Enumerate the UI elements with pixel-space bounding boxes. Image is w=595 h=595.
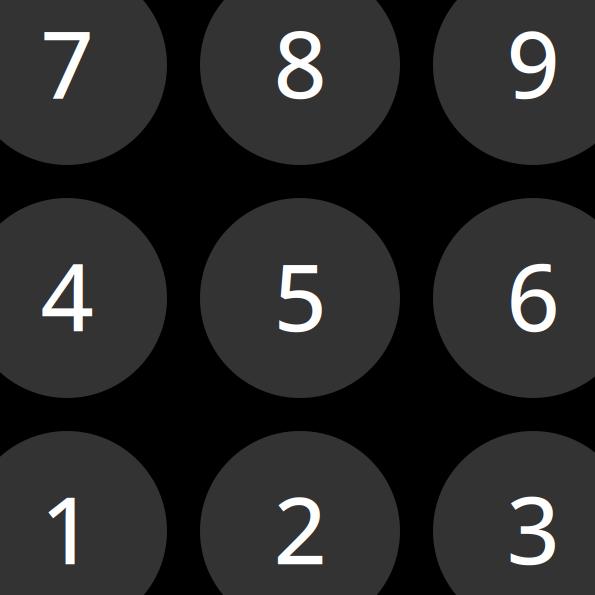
staticText: 3 (506, 464, 559, 591)
button[interactable]: 9 (433, 0, 595, 165)
staticText: 8 (273, 0, 326, 125)
button[interactable]: 3 (433, 431, 595, 595)
staticText: 1 (40, 464, 93, 591)
button[interactable]: 1 (0, 431, 167, 595)
button[interactable]: 4 (0, 198, 167, 398)
staticText: 7 (40, 0, 93, 125)
staticText: 5 (273, 231, 326, 358)
button[interactable]: 7 (0, 0, 167, 165)
staticText: 2 (273, 464, 326, 591)
button[interactable]: 2 (200, 431, 400, 595)
staticText: 6 (506, 231, 559, 358)
button[interactable]: 5 (200, 198, 400, 398)
staticText: 4 (40, 231, 93, 358)
button[interactable]: 6 (433, 198, 595, 398)
staticText: 9 (506, 0, 559, 125)
button[interactable]: 8 (200, 0, 400, 165)
